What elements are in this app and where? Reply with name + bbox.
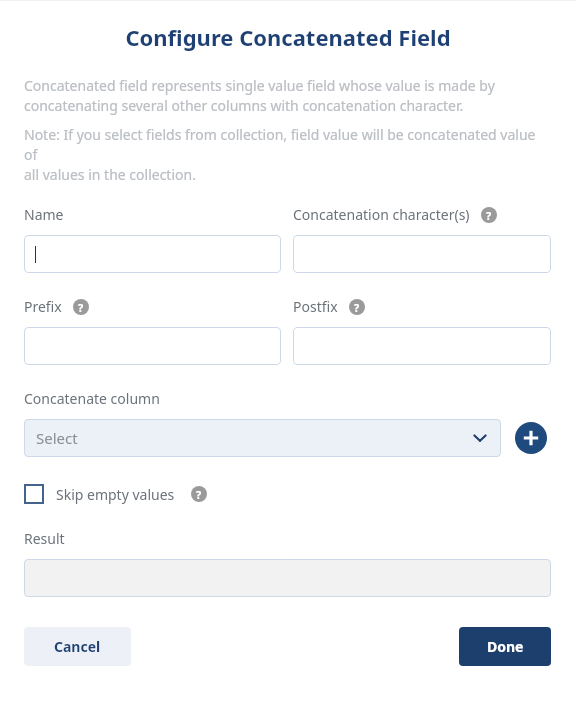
button[interactable]: Cancel bbox=[24, 627, 131, 666]
staticText: Concatenation character(s) bbox=[293, 205, 470, 224]
staticText: Result bbox=[24, 529, 65, 548]
button[interactable] bbox=[24, 235, 281, 273]
staticText: ? bbox=[486, 208, 492, 223]
staticText: Concatenated field represents single val… bbox=[24, 76, 495, 115]
button[interactable]: Help bbox=[349, 299, 365, 315]
staticText: ? bbox=[78, 300, 84, 315]
staticText: ? bbox=[354, 300, 360, 315]
button[interactable]: Help bbox=[191, 486, 207, 502]
button[interactable]: Done bbox=[459, 627, 551, 666]
button[interactable]: Help bbox=[481, 207, 497, 223]
staticText: Cancel bbox=[54, 637, 101, 656]
staticText: Select bbox=[36, 428, 78, 448]
staticText: Prefix bbox=[24, 297, 62, 316]
button[interactable]: Skip empty values bbox=[24, 484, 207, 504]
button[interactable] bbox=[24, 559, 551, 597]
button[interactable] bbox=[24, 327, 281, 365]
button[interactable]: Help bbox=[73, 299, 89, 315]
staticText: Name bbox=[24, 205, 64, 224]
staticText: Skip empty values bbox=[56, 485, 175, 504]
staticText: ? bbox=[196, 487, 202, 502]
staticText: Done bbox=[487, 637, 524, 656]
staticText: Concatenate column bbox=[24, 389, 160, 408]
button[interactable]: Select bbox=[24, 419, 501, 457]
button[interactable] bbox=[293, 327, 551, 365]
button[interactable]: Add column bbox=[515, 422, 547, 454]
staticText: Configure Concatenated Field bbox=[0, 22, 576, 52]
staticText: Postfix bbox=[293, 297, 338, 316]
button[interactable] bbox=[293, 235, 551, 273]
staticText: Note: If you select fields from collecti… bbox=[24, 125, 552, 184]
